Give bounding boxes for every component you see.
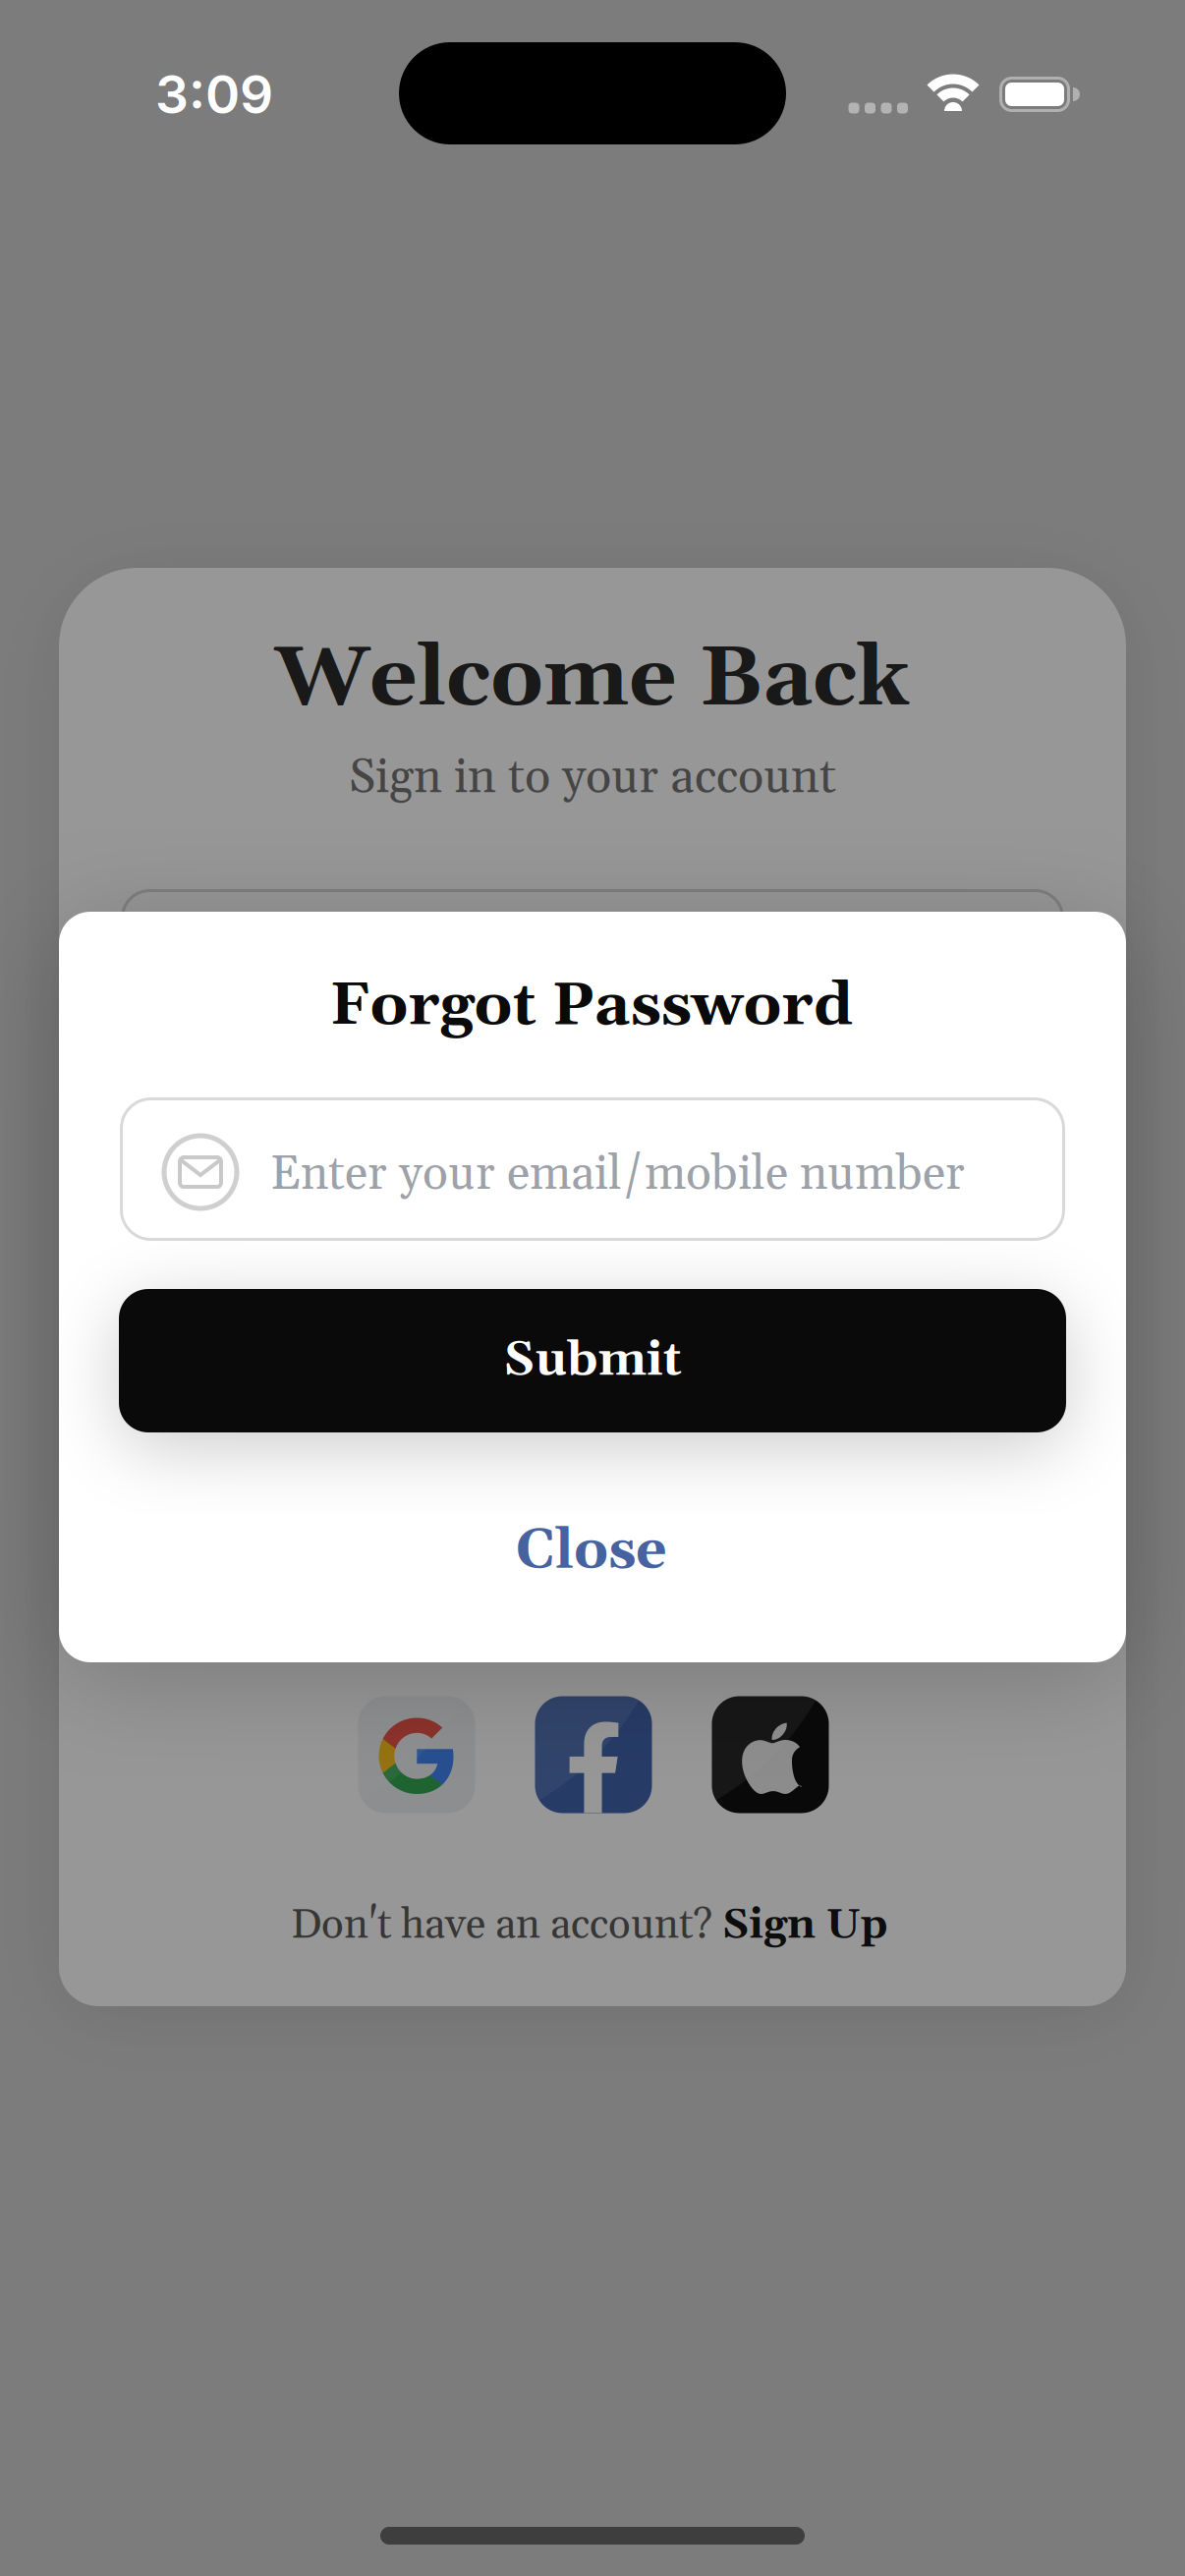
button[interactable]: Submit [119,1289,1066,1432]
button[interactable]: Sign Up [722,1899,888,1952]
staticText: Submit [504,1330,681,1391]
button[interactable]: Sign in with Google [358,1696,475,1813]
button[interactable]: Sign in with Apple [712,1696,829,1813]
button[interactable]: Enter your email/mobile number [120,1097,1065,1241]
staticText: Sign in to your account [349,748,836,808]
staticText: Welcome Back [275,627,910,733]
staticText: 3:09 [155,63,273,126]
staticText: Don't have an account? [291,1899,722,1952]
staticText: Forgot Password [330,968,853,1044]
staticText: Sign Up [722,1899,888,1952]
button[interactable]: Sign in with Facebook [535,1696,652,1813]
staticText: Close [516,1517,667,1586]
button[interactable]: Close [516,1517,667,1586]
staticText: Enter your email/mobile number [270,1145,965,1205]
